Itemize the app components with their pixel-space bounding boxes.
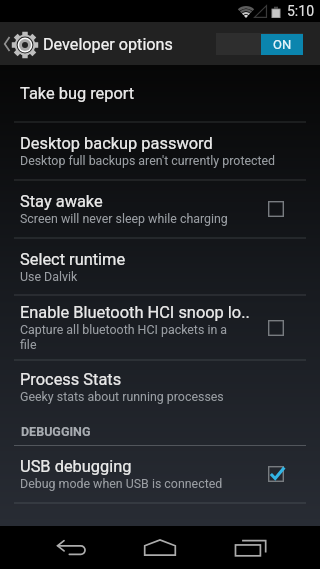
button[interactable]: Navigate up (0, 22, 38, 65)
button[interactable]: USB debugging (0, 446, 320, 502)
staticText: Desktop full backups aren't currently pr… (20, 153, 290, 168)
button[interactable]: Select runtime (0, 239, 320, 294)
staticText: ON (273, 37, 292, 52)
staticText: Select runtime (20, 250, 126, 269)
button[interactable]: Developer options on (216, 33, 303, 55)
button[interactable]: Process Stats (0, 361, 320, 412)
staticText: Enable Bluetooth HCI snoop lo.. (20, 303, 250, 322)
button[interactable]: Home (125, 526, 195, 569)
staticText: Developer options (43, 35, 173, 54)
staticText: Take bug report (20, 84, 135, 103)
staticText: Desktop backup password (20, 134, 213, 153)
staticText: Stay awake (20, 192, 103, 211)
button[interactable]: Recent apps (215, 526, 285, 569)
staticText: 5:10 (287, 3, 314, 19)
button[interactable]: Back (36, 526, 106, 569)
button[interactable]: Enable Bluetooth HCI snoop lo.. (0, 296, 320, 359)
staticText: DEBUGGING (21, 424, 91, 439)
staticText: Capture all bluetooth HCI packets in a f… (20, 322, 234, 352)
button[interactable]: Take bug report (0, 65, 320, 121)
staticText: Process Stats (20, 370, 122, 389)
staticText: Debug mode when USB is connected (20, 476, 234, 491)
staticText: Geeky stats about running processes (20, 389, 290, 404)
staticText: Use Dalvik (20, 269, 290, 284)
staticText: Screen will never sleep while charging (20, 211, 234, 226)
staticText: USB debugging (20, 457, 132, 476)
button[interactable]: Desktop backup password (0, 123, 320, 179)
button[interactable]: Stay awake (0, 181, 320, 237)
